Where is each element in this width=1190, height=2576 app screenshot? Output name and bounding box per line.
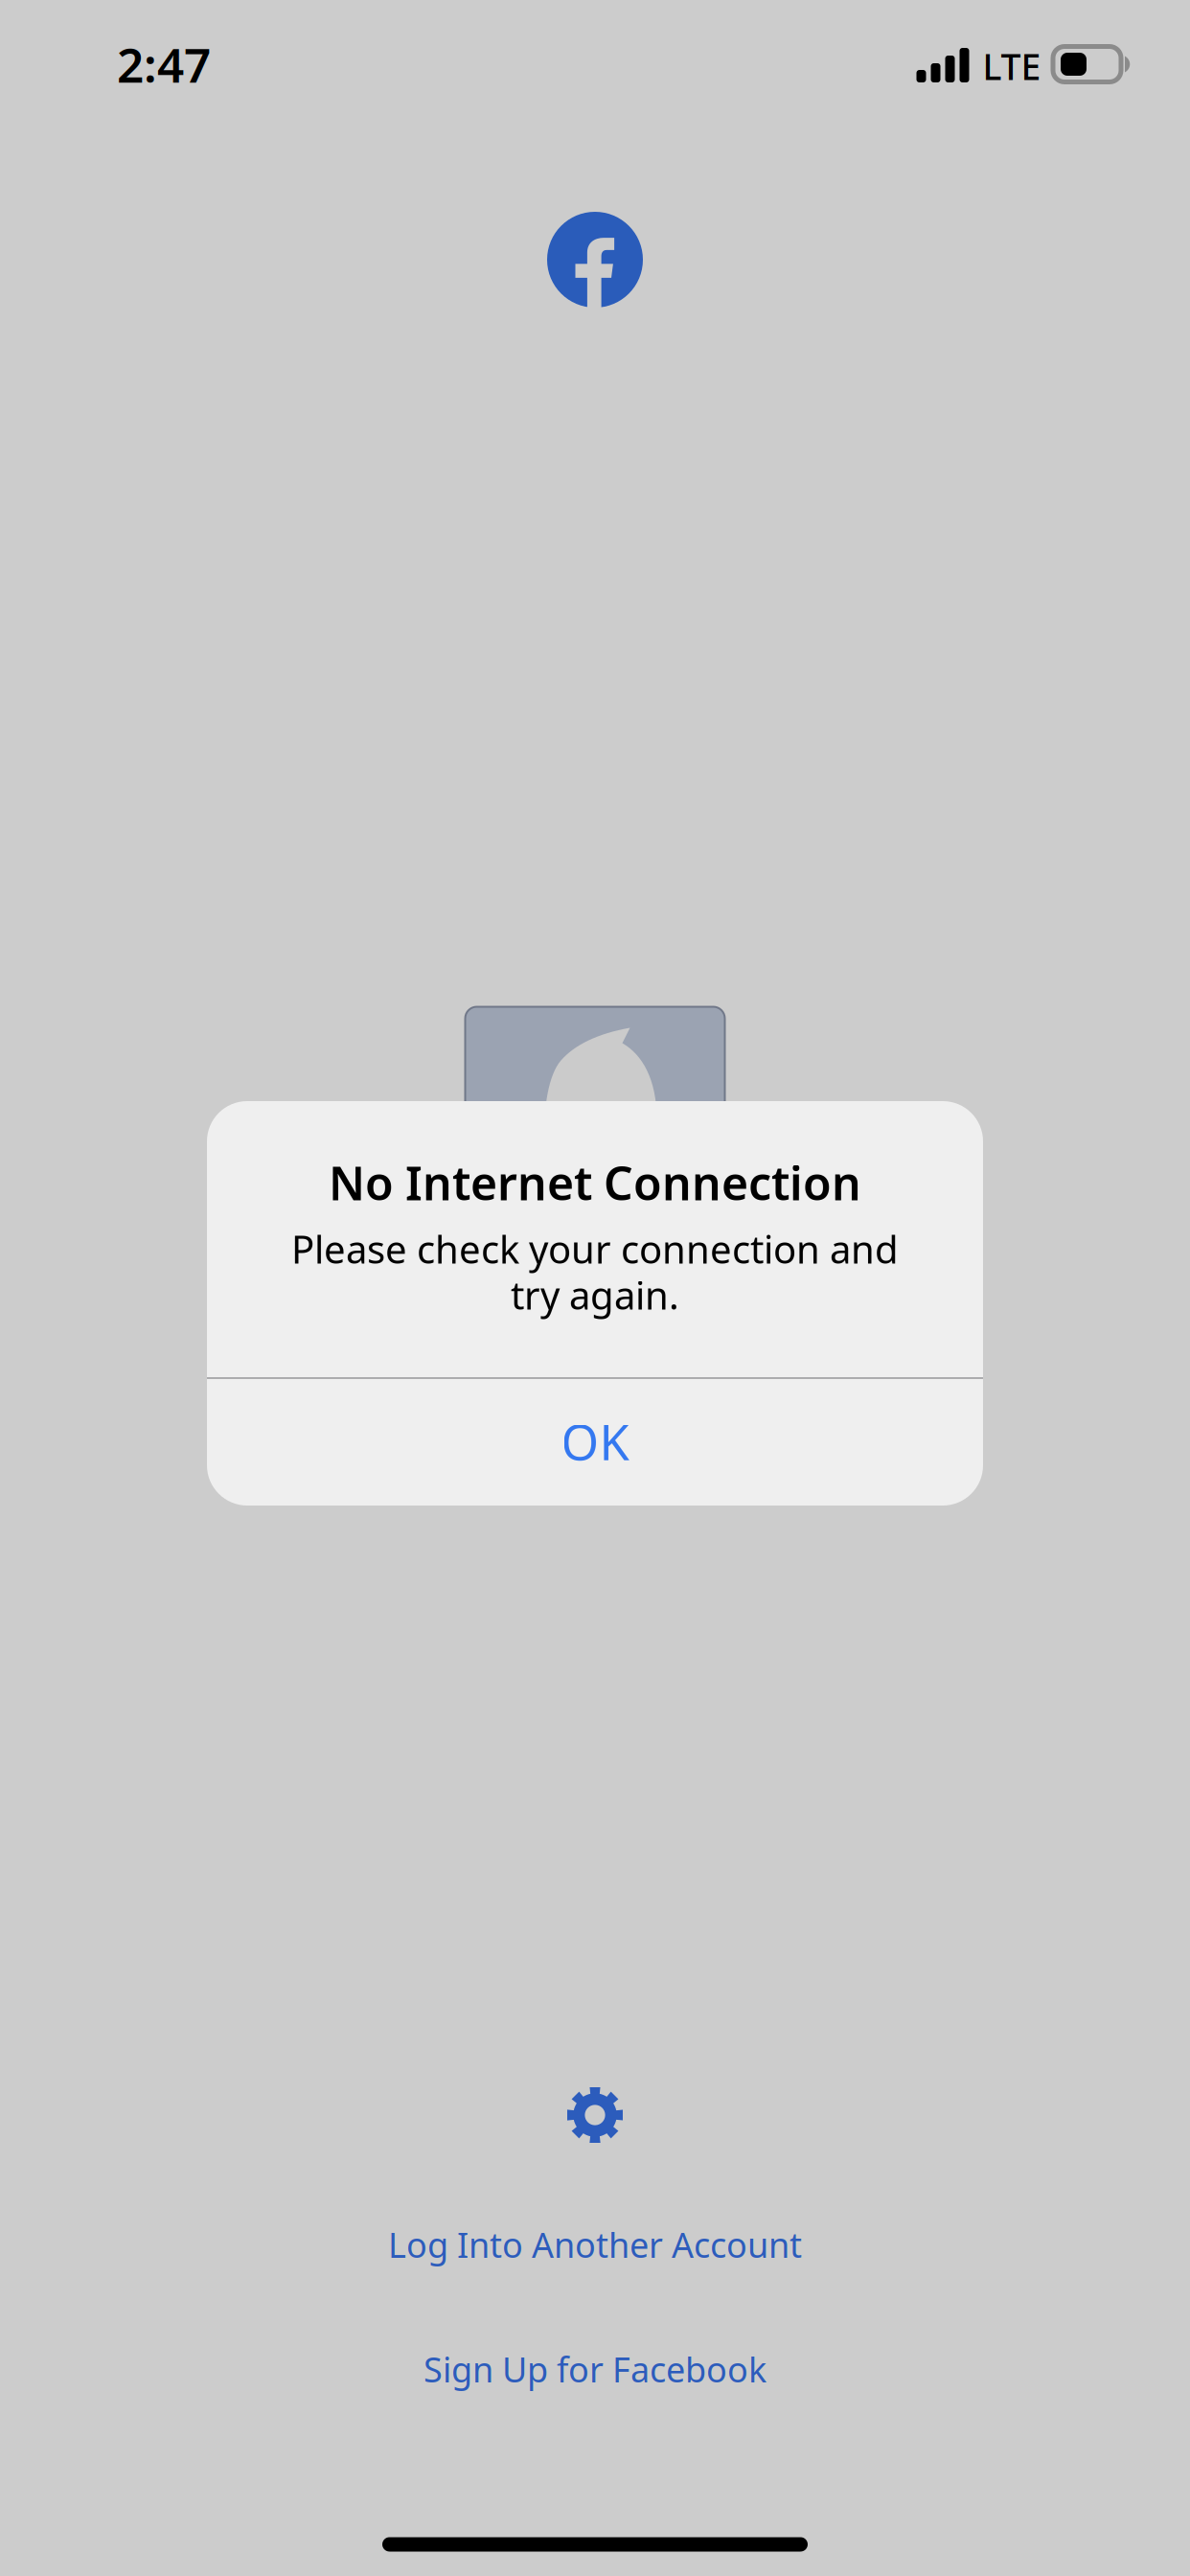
button[interactable]: OK <box>207 1379 983 1504</box>
staticText: OK <box>561 1409 629 1474</box>
staticText: Log Into Another Account <box>388 2222 802 2267</box>
staticText: 2:47 <box>117 33 211 96</box>
staticText: try again. <box>511 1269 679 1320</box>
button[interactable]: Sign Up for Facebook <box>92 2313 1098 2425</box>
button[interactable]: Log Into Another Account <box>92 2189 1098 2300</box>
staticText: Sign Up for Facebook <box>423 2346 767 2392</box>
button[interactable]: Settings <box>532 2052 658 2178</box>
staticText: No Internet Connection <box>329 1152 861 1213</box>
staticText: LTE <box>983 42 1041 90</box>
staticText: Please check your connection and <box>291 1223 899 1274</box>
